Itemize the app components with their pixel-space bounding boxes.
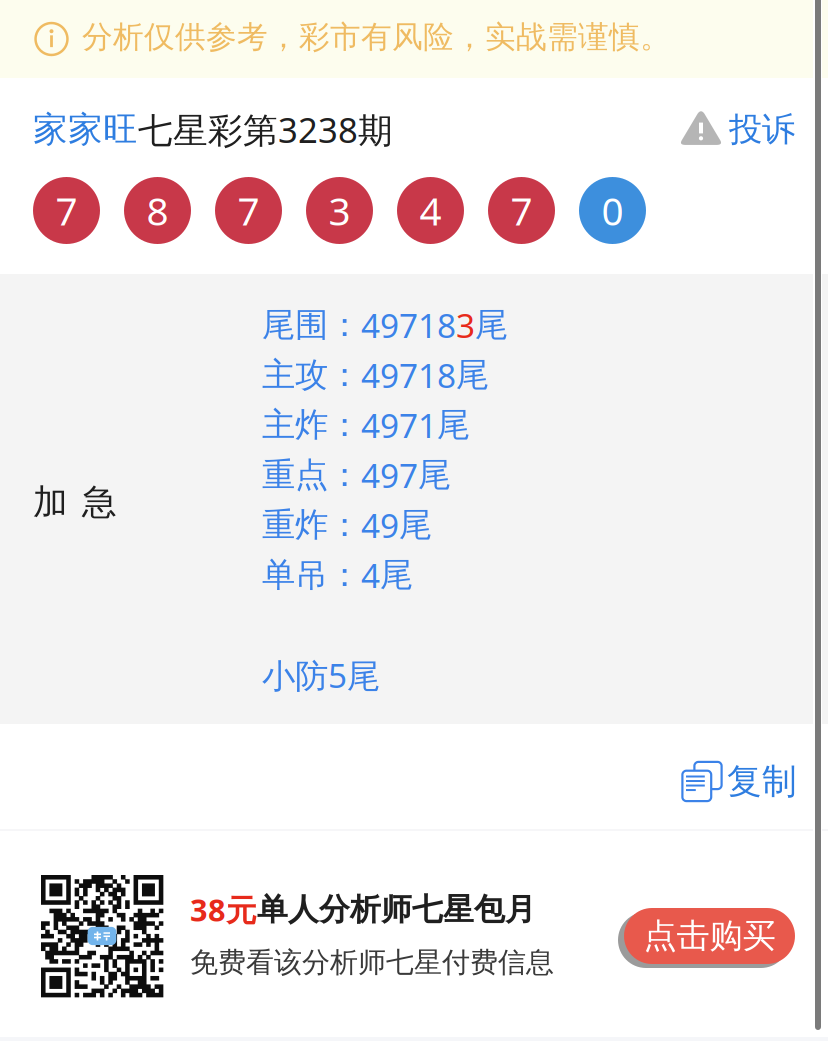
staticText: 重点： bbox=[262, 454, 361, 495]
staticText: 4 bbox=[361, 553, 380, 597]
staticText: 免费看该分析师七星付费信息 bbox=[190, 945, 554, 980]
staticText: 尾 bbox=[418, 454, 451, 495]
button[interactable]: 投诉 bbox=[680, 100, 828, 141]
button[interactable]: 家家旺 bbox=[0, 97, 393, 143]
staticText: 七星彩第3238期 bbox=[138, 106, 393, 152]
staticText: 小防5尾 bbox=[262, 653, 380, 697]
staticText: 复制 bbox=[727, 760, 797, 803]
staticText: 投诉 bbox=[729, 109, 795, 150]
staticText: 0 bbox=[601, 185, 623, 236]
staticText: 49 bbox=[361, 503, 399, 547]
staticText: 38元 bbox=[190, 889, 257, 930]
staticText: 点击购买 bbox=[643, 915, 775, 956]
button[interactable]: 38元 bbox=[0, 875, 554, 997]
staticText: 尾 bbox=[456, 354, 489, 395]
staticText: 家家旺 bbox=[33, 108, 138, 151]
staticText: 497 bbox=[361, 453, 418, 497]
staticText: 单吊： bbox=[262, 554, 361, 595]
staticText: 尾围： bbox=[262, 304, 361, 345]
staticText: 加 急 bbox=[33, 481, 117, 524]
staticText: 主炸： bbox=[262, 404, 361, 445]
button[interactable]: 点击购买 bbox=[618, 901, 828, 971]
staticText: 49718 bbox=[361, 303, 456, 347]
button[interactable]: 复制 bbox=[682, 755, 828, 798]
staticText: 7 bbox=[55, 185, 77, 236]
staticText: 分析仅供参考，彩市有风险，实战需谨慎。 bbox=[82, 18, 671, 56]
staticText: 尾 bbox=[475, 304, 508, 345]
staticText: 主攻： bbox=[262, 354, 361, 395]
staticText: 8 bbox=[146, 185, 168, 236]
staticText: 单人分析师七星包月 bbox=[257, 891, 536, 928]
staticText: 重炸： bbox=[262, 504, 361, 545]
staticText: 4 bbox=[419, 185, 441, 236]
staticText: 尾 bbox=[380, 554, 413, 595]
staticText: 7 bbox=[237, 185, 259, 236]
staticText: 7 bbox=[510, 185, 532, 236]
staticText: 3 bbox=[456, 303, 475, 347]
staticText: 尾 bbox=[399, 504, 432, 545]
staticText: 尾 bbox=[437, 404, 470, 445]
staticText: 49718 bbox=[361, 353, 456, 397]
staticText: 3 bbox=[328, 185, 350, 236]
staticText: 4971 bbox=[361, 403, 437, 447]
